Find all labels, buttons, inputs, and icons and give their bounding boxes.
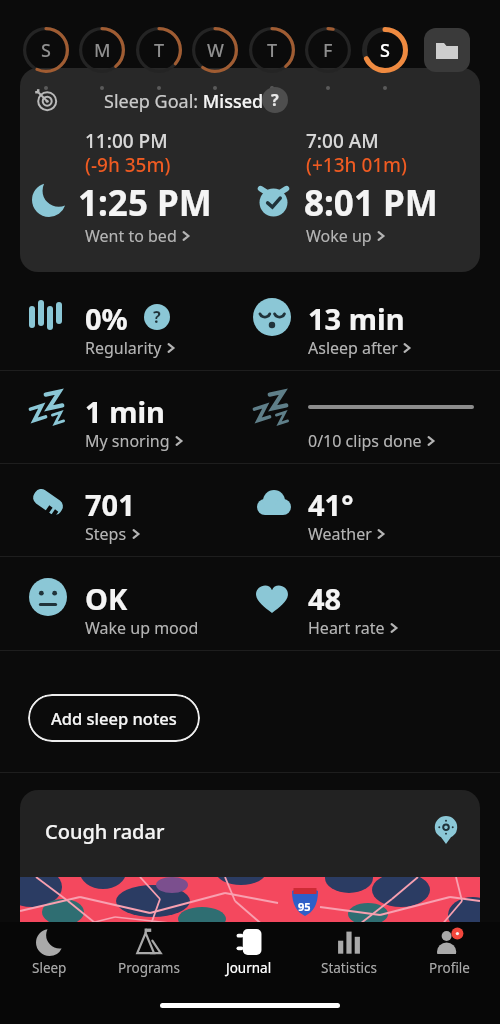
staticText: Went to bed <box>85 225 177 247</box>
button[interactable]: Asleep after <box>308 337 411 359</box>
staticText: 1:25 PM <box>78 179 212 227</box>
staticText: 701 <box>85 485 135 524</box>
staticText: (-9h 35m) <box>85 152 171 178</box>
staticText: ? <box>271 89 279 111</box>
button[interactable]: Regularity <box>85 337 175 359</box>
button[interactable]: Add sleep notes <box>28 694 200 742</box>
staticText: 0/10 clips done <box>308 430 422 452</box>
staticText: Wake up mood <box>85 617 199 639</box>
button[interactable]: Steps <box>85 523 140 545</box>
staticText: 7:00 AM <box>306 128 379 154</box>
button[interactable]: 0/10 clips done <box>308 430 435 452</box>
staticText: Regularity <box>85 337 162 359</box>
button[interactable]: Wake up mood <box>85 617 199 639</box>
staticText: ? <box>153 306 161 328</box>
staticText: 0% <box>85 299 128 338</box>
button[interactable]: Journal <box>209 925 289 987</box>
button[interactable]: My snoring <box>85 430 183 452</box>
button[interactable]: Weather <box>308 523 385 545</box>
staticText: F <box>323 38 333 63</box>
button[interactable]: ? <box>144 304 170 330</box>
staticText: Profile <box>429 959 470 977</box>
button[interactable]: Statistics <box>309 925 389 987</box>
button[interactable]: M <box>79 27 125 73</box>
staticText: 13 min <box>308 299 405 338</box>
staticText: Journal <box>226 959 272 977</box>
button[interactable]: Went to bed <box>85 225 190 247</box>
button[interactable]: Programs <box>109 925 189 987</box>
staticText: Weather <box>308 523 372 545</box>
button[interactable]: Profile <box>409 925 489 987</box>
button[interactable]: 95 <box>20 790 480 1024</box>
staticText: Steps <box>85 523 127 545</box>
staticText: S <box>380 38 390 63</box>
staticText: 95 <box>298 899 311 914</box>
staticText: Asleep after <box>308 337 398 359</box>
button[interactable]: T <box>136 27 182 73</box>
staticText: Add sleep notes <box>51 707 177 729</box>
staticText: Woke up <box>306 225 372 247</box>
button[interactable]: Woke up <box>306 225 385 247</box>
button[interactable]: Heart rate <box>308 617 398 639</box>
button[interactable]: S <box>23 27 69 73</box>
staticText: Sleep Goal: Missed <box>104 89 264 114</box>
staticText: 8:01 PM <box>304 179 438 227</box>
staticText: Heart rate <box>308 617 385 639</box>
staticText: OK <box>85 579 128 618</box>
staticText: S <box>41 38 51 63</box>
staticText: Statistics <box>321 959 377 977</box>
staticText: T <box>154 38 165 63</box>
staticText: T <box>267 38 278 63</box>
button[interactable]: F <box>305 27 351 73</box>
staticText: My snoring <box>85 430 170 452</box>
button[interactable]: W <box>192 27 238 73</box>
button[interactable]: T <box>249 27 295 73</box>
staticText: 48 <box>308 579 342 618</box>
button[interactable]: Sleep <box>9 925 89 987</box>
button[interactable]: ? <box>262 87 288 113</box>
staticText: (+13h 01m) <box>306 152 408 178</box>
button[interactable] <box>424 28 470 72</box>
staticText: Sleep <box>32 959 67 977</box>
staticText: 11:00 PM <box>85 128 168 154</box>
staticText: 41° <box>308 485 354 524</box>
button[interactable] <box>20 68 480 272</box>
button[interactable]: S <box>362 27 408 73</box>
staticText: Programs <box>118 959 180 977</box>
staticText: 1 min <box>85 392 165 431</box>
staticText: M <box>94 38 111 63</box>
staticText: Cough radar <box>45 818 165 845</box>
staticText: W <box>207 38 224 63</box>
